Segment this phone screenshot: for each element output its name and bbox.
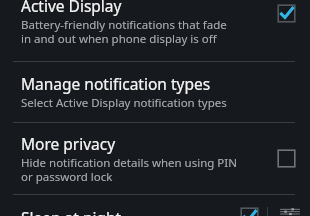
button[interactable]: Sleep at night xyxy=(21,207,236,216)
other: Sleep at night settings xyxy=(279,207,301,216)
button[interactable]: Manage notification types xyxy=(0,62,310,118)
staticText: Hide notification details when using PIN… xyxy=(21,155,237,184)
staticText: Battery-friendly notifications that fade… xyxy=(21,17,227,46)
button[interactable]: Sleep at night settings xyxy=(279,207,301,216)
staticText: Select Active Display notification types xyxy=(21,95,227,111)
staticText: Manage notification types xyxy=(21,73,211,94)
button[interactable]: Sleep at night toggle xyxy=(240,207,259,216)
button[interactable]: Active Display toggle xyxy=(277,4,296,23)
button[interactable]: Active Display xyxy=(0,0,310,50)
button[interactable]: More privacy toggle xyxy=(277,149,296,168)
staticText: Active Display xyxy=(21,0,122,16)
staticText: Sleep at night xyxy=(21,207,122,216)
button[interactable]: More privacy xyxy=(0,123,310,191)
staticText: More privacy xyxy=(21,133,116,154)
